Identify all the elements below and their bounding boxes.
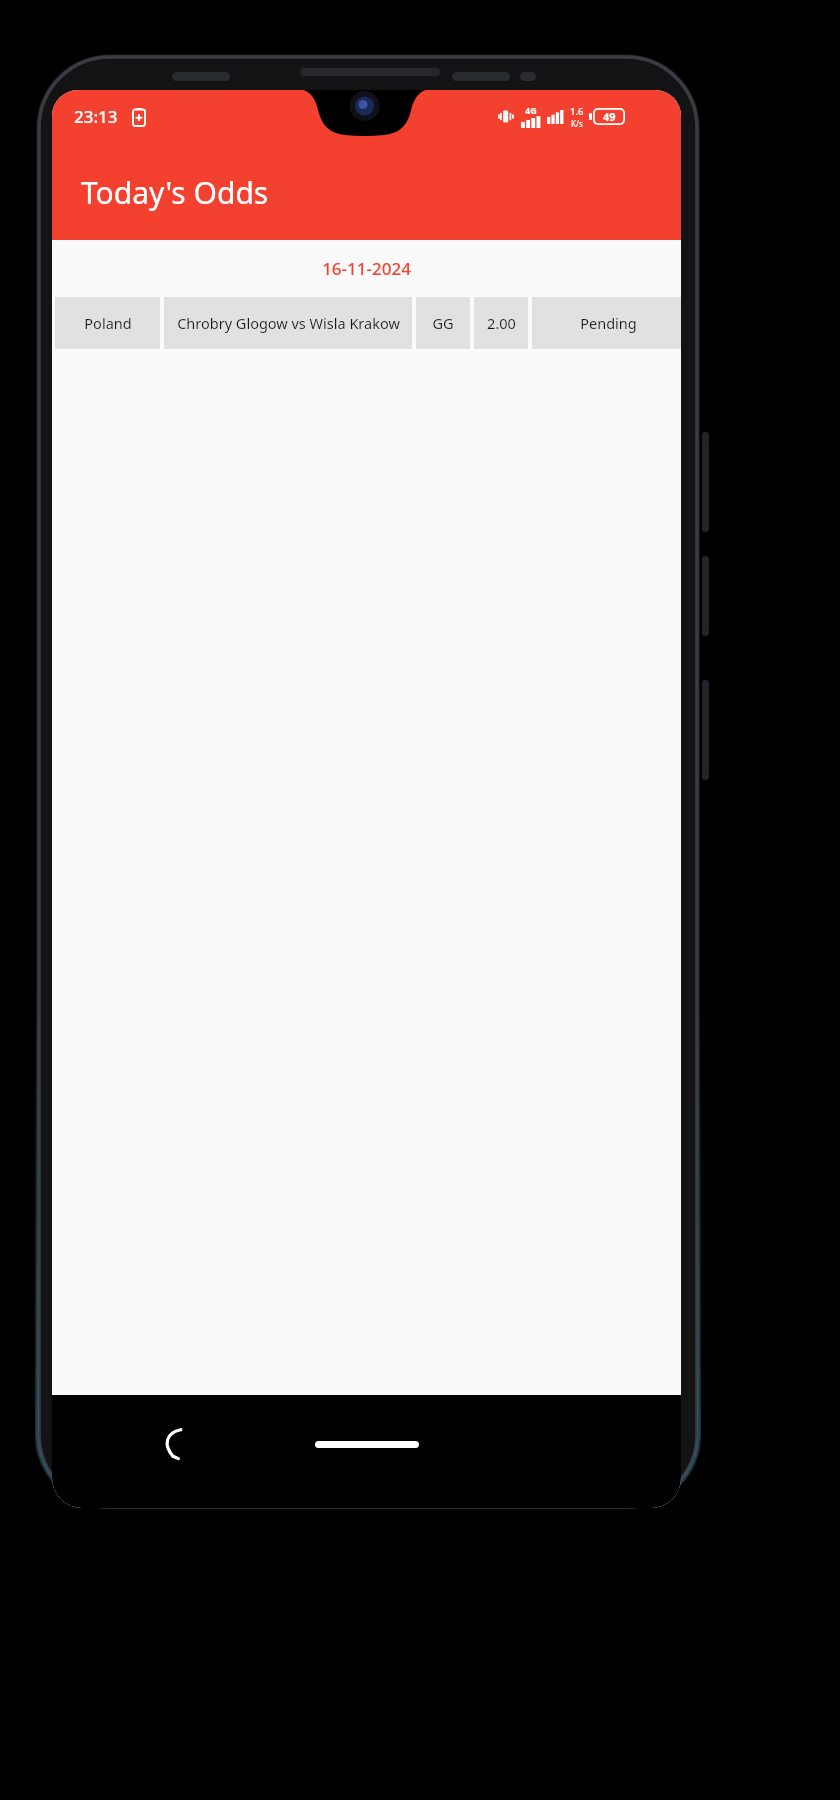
staticText: Pending — [580, 313, 637, 333]
staticText: Today's Odds — [81, 172, 269, 213]
button[interactable]: 16-11-2024 — [52, 240, 681, 297]
staticText: 2.00 — [487, 313, 516, 333]
staticText: 16-11-2024 — [322, 257, 411, 280]
staticText: 23:13 — [74, 105, 118, 128]
button[interactable]: Poland — [52, 297, 681, 349]
button[interactable]: Back — [148, 1416, 204, 1472]
staticText: GG — [432, 313, 454, 333]
button[interactable]: Home — [312, 1429, 422, 1459]
staticText: 1.6 — [570, 105, 584, 118]
staticText: 49 — [603, 109, 616, 124]
staticText: Poland — [84, 313, 132, 333]
staticText: 4G — [525, 104, 537, 116]
staticText: Chrobry Glogow vs Wisla Krakow — [177, 313, 400, 333]
staticText: K/s — [571, 118, 583, 129]
